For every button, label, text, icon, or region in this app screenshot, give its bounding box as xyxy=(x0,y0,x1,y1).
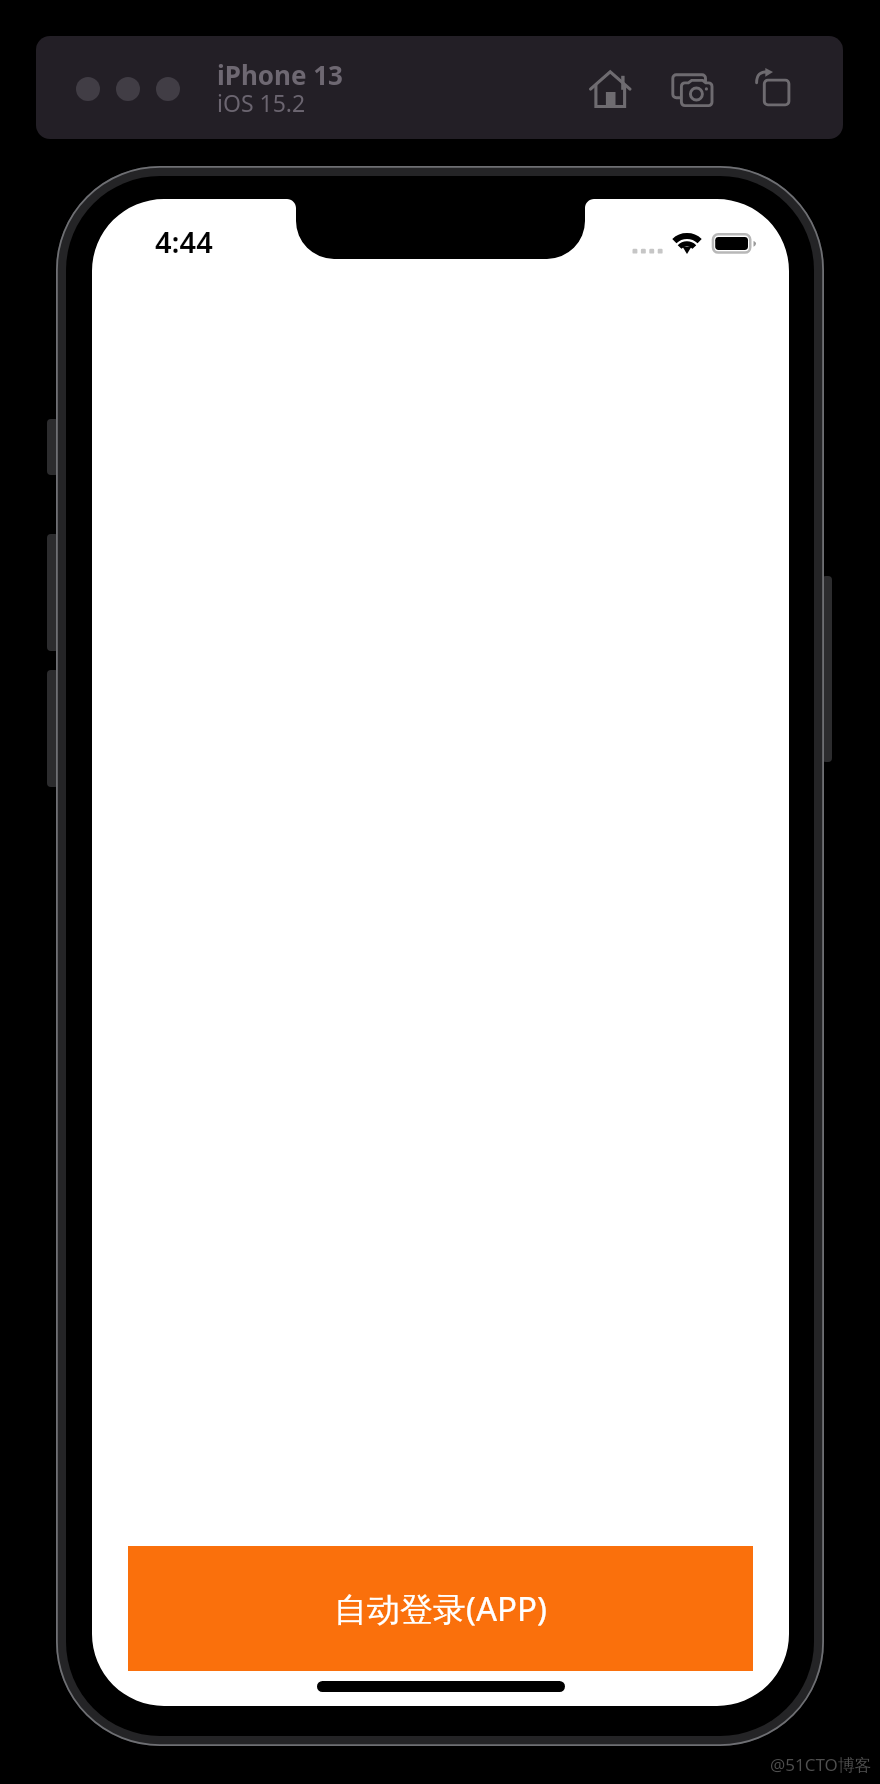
button[interactable]: Rotate xyxy=(748,68,796,116)
button[interactable]: Zoom xyxy=(156,77,180,101)
button[interactable]: Minimise xyxy=(116,77,140,101)
staticText: iOS 15.2 xyxy=(217,87,306,118)
staticText: @51CTO博客 xyxy=(770,1753,872,1776)
button[interactable]: 自动登录(APP) xyxy=(128,1546,753,1671)
staticText: iPhone 13 xyxy=(217,57,343,92)
staticText: 自动登录(APP) xyxy=(334,1586,547,1631)
button[interactable]: Close xyxy=(76,77,100,101)
button[interactable]: Screenshot xyxy=(668,70,716,118)
button[interactable]: Home xyxy=(587,70,635,118)
staticText: 4:44 xyxy=(155,222,213,261)
